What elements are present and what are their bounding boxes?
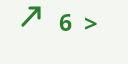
staticText: >	[84, 6, 98, 39]
staticText: 6	[59, 6, 73, 37]
